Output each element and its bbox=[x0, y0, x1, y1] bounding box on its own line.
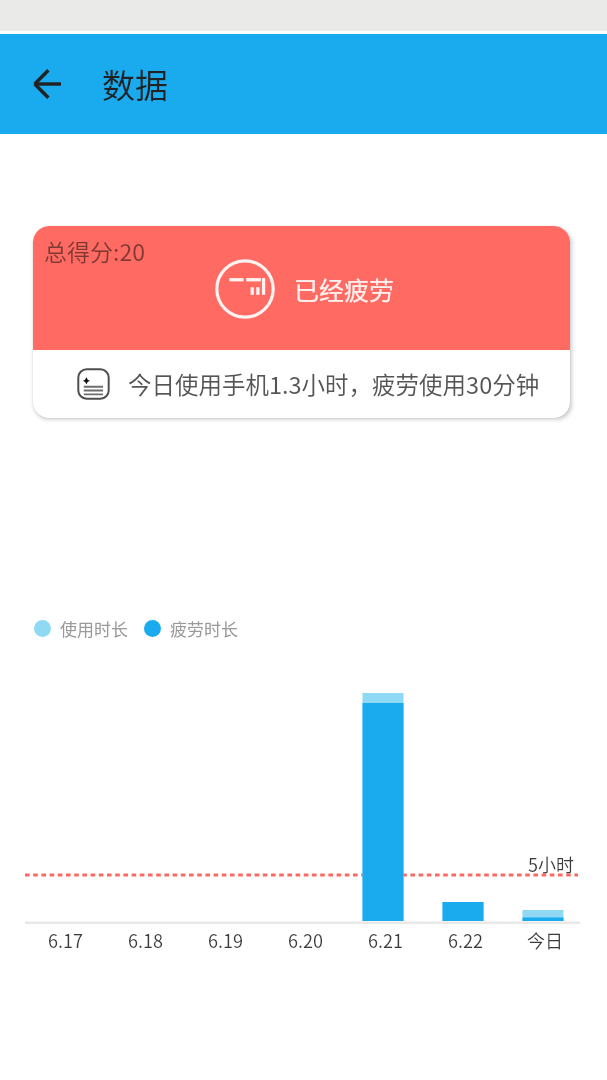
staticText: 6.21 bbox=[368, 927, 403, 953]
staticText: 总得分:20 bbox=[44, 234, 145, 267]
staticText: 6.22 bbox=[448, 927, 483, 953]
staticText: 6.19 bbox=[208, 927, 243, 953]
staticText: 今日 bbox=[527, 927, 563, 953]
button[interactable]: Back bbox=[19, 56, 75, 112]
staticText: 今日使用手机1.3小时，疲劳使用30分钟 bbox=[128, 367, 540, 401]
staticText: 使用时长 bbox=[60, 616, 128, 641]
staticText: 6.17 bbox=[48, 927, 83, 953]
staticText: 5小时 bbox=[528, 851, 574, 877]
staticText: 6.18 bbox=[128, 927, 163, 953]
staticText: 数据 bbox=[102, 60, 168, 108]
staticText: 疲劳时长 bbox=[170, 616, 238, 641]
staticText: 已经疲劳 bbox=[294, 271, 395, 307]
staticText: 6.20 bbox=[288, 927, 323, 953]
